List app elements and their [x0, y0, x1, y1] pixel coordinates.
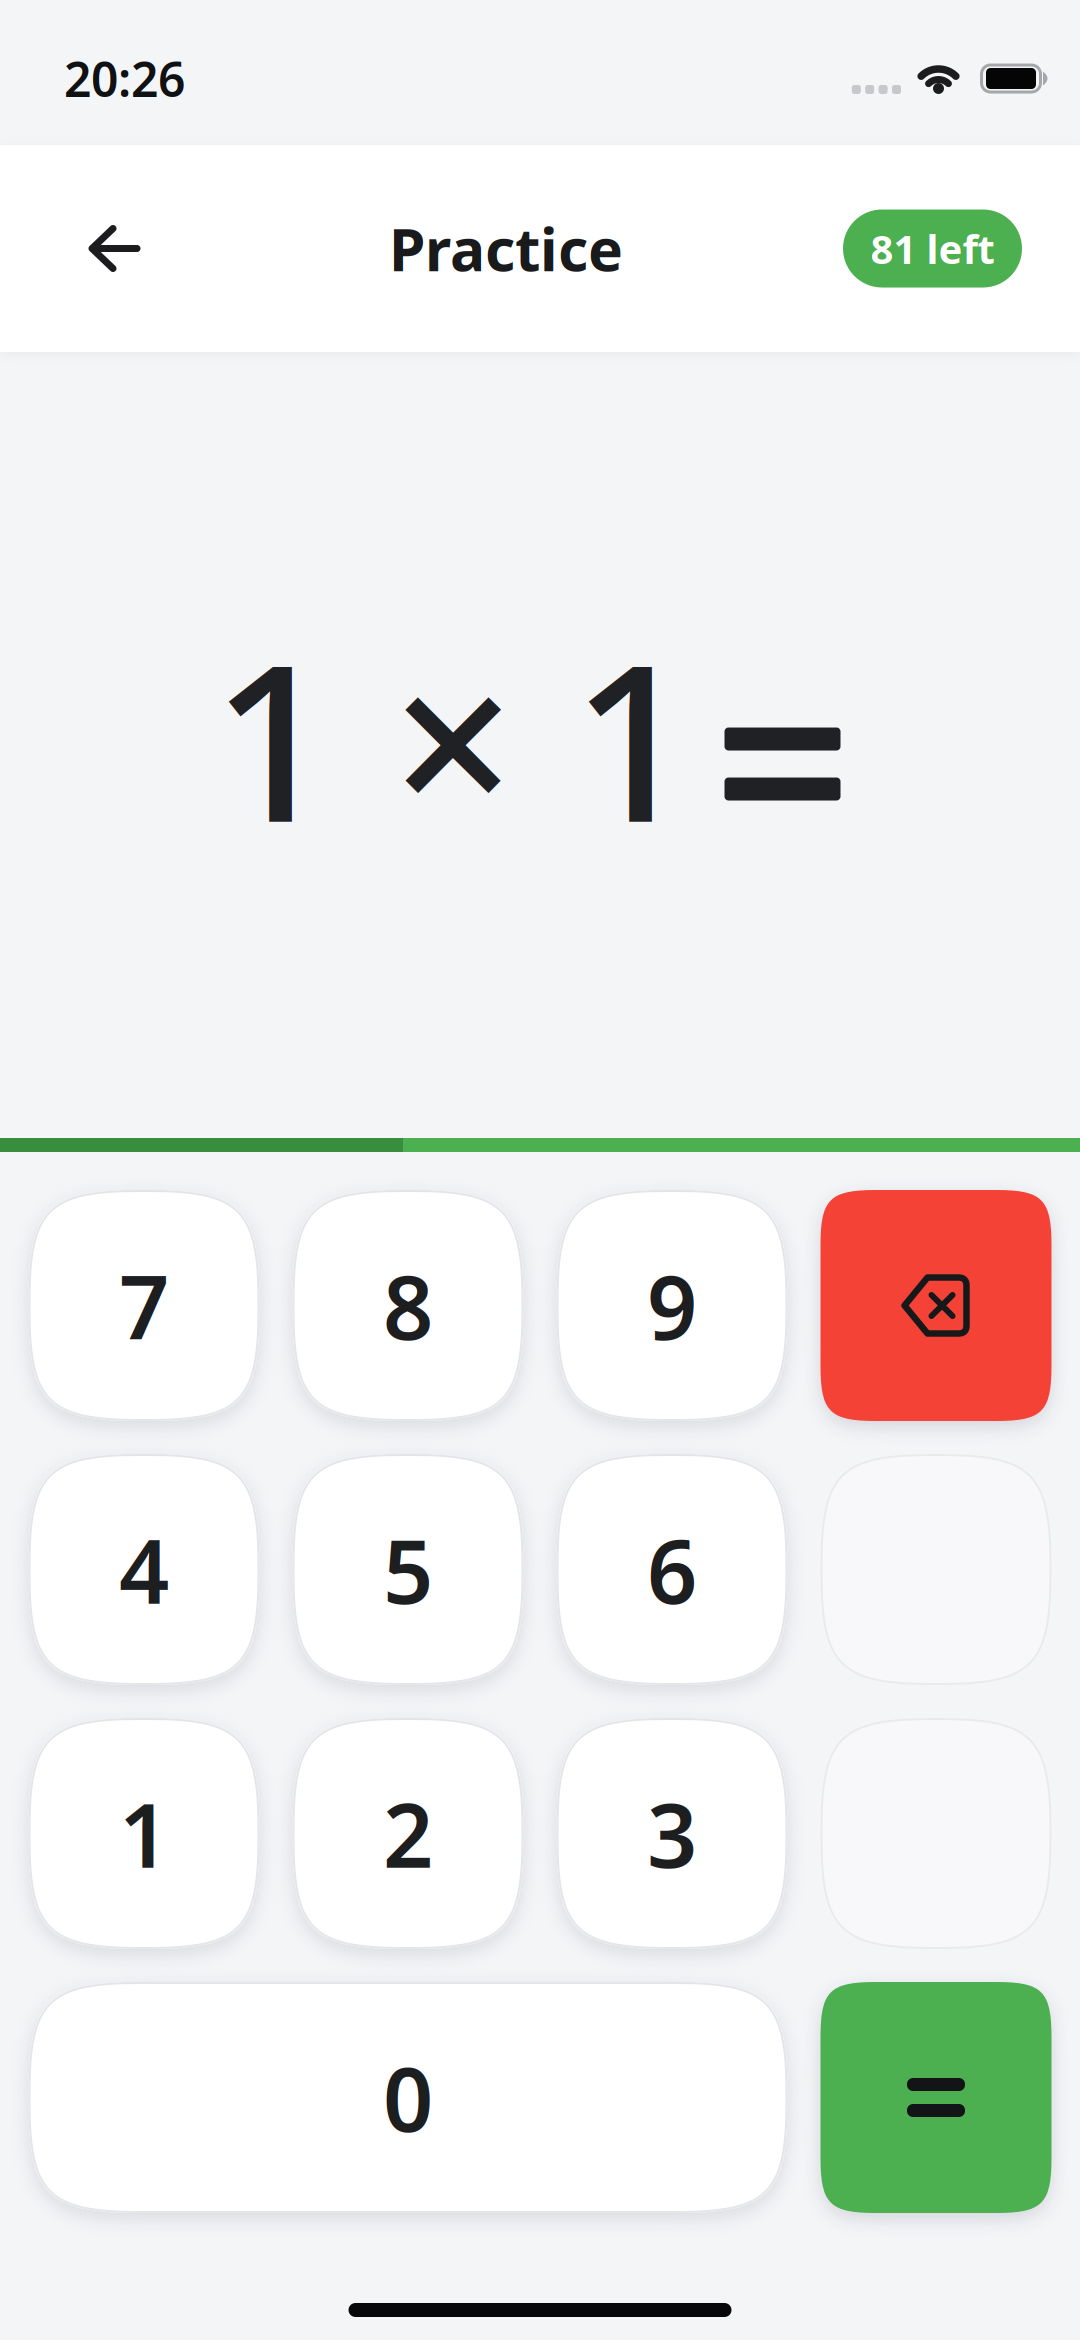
staticText: 7 [119, 1247, 169, 1364]
staticText: 4 [119, 1511, 169, 1628]
staticText: 6 [647, 1511, 697, 1628]
button[interactable]: 7 [28, 1190, 259, 1421]
button[interactable]: 6 [556, 1454, 787, 1685]
staticText: 5 [383, 1511, 433, 1628]
button[interactable]: 4 [28, 1454, 259, 1685]
staticText: 0 [383, 2039, 433, 2156]
staticText: 2 [383, 1775, 433, 1892]
staticText: 9 [647, 1247, 697, 1364]
button[interactable]: 0 [28, 1982, 787, 2213]
staticText: 8 [383, 1247, 433, 1364]
button[interactable]: 8 [292, 1190, 523, 1421]
button[interactable]: 81 left [843, 209, 1080, 287]
button[interactable]: 3 [556, 1718, 787, 1949]
button[interactable]: 9 [556, 1190, 787, 1421]
button[interactable] [820, 1982, 1051, 2213]
button[interactable]: 1 [28, 1718, 259, 1949]
button[interactable] [0, 225, 140, 271]
button[interactable] [820, 1190, 1051, 1421]
button[interactable]: 2 [292, 1718, 523, 1949]
staticText: 3 [647, 1775, 697, 1892]
staticText: 1 × 1 [211, 595, 695, 881]
staticText: 1 [119, 1775, 169, 1892]
staticText: 20:26 [64, 47, 185, 110]
button[interactable]: 5 [292, 1454, 523, 1685]
staticText: Practice [389, 209, 623, 287]
staticText: 81 left [870, 222, 994, 275]
